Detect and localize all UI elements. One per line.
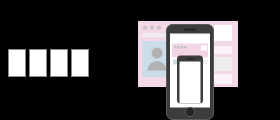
button[interactable]: Step 2	[29, 49, 47, 77]
button[interactable]: Step 3	[50, 49, 68, 77]
button[interactable]: Phone preview	[166, 24, 214, 120]
button[interactable]: Step 1	[8, 49, 26, 77]
button[interactable]: Desktop window preview	[138, 21, 238, 87]
button[interactable]: Step 4	[71, 49, 89, 77]
